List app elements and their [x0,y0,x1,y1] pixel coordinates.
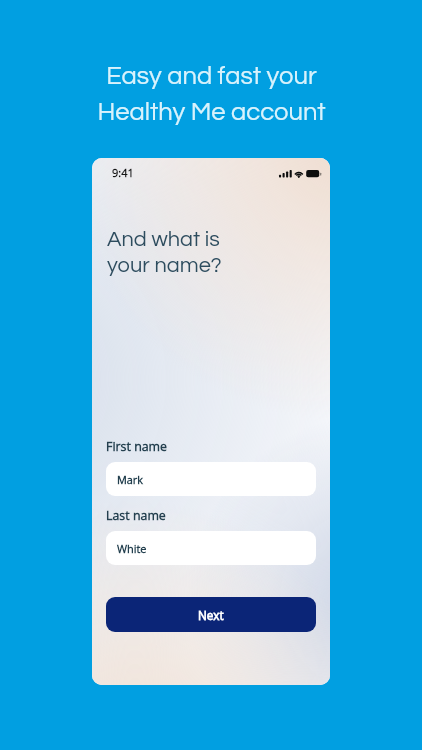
staticText: Easy and fast your Healthy Me account [97,63,326,125]
staticText: Mark [117,472,144,487]
staticText: 9:41 [112,165,134,180]
staticText: And what is your name? [107,228,222,277]
button[interactable]: Mark [106,462,316,496]
button[interactable]: Next [106,597,316,632]
staticText: Next [198,607,224,623]
staticText: First name [106,438,168,455]
button[interactable]: White [106,531,316,565]
staticText: Last name [106,507,166,524]
staticText: White [117,541,147,556]
